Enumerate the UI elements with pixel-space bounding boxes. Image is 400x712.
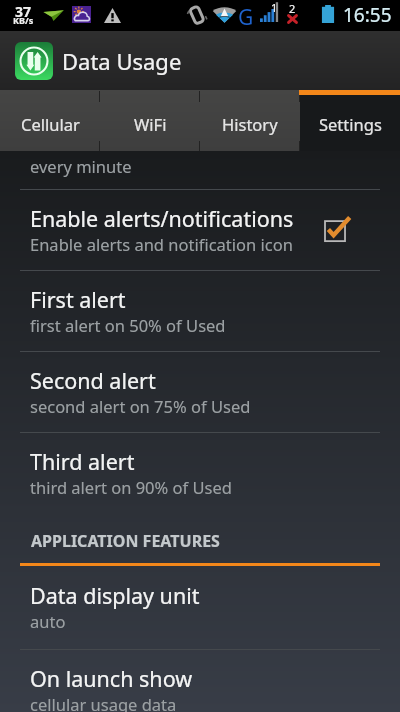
staticText: Third alert xyxy=(30,447,135,476)
staticText: First alert xyxy=(30,285,126,314)
button[interactable]: Data display unit xyxy=(0,566,400,649)
button[interactable]: On launch show xyxy=(0,649,400,712)
staticText: auto xyxy=(30,610,66,632)
button[interactable]: Settings xyxy=(300,90,400,151)
staticText: cellular usage data xyxy=(30,693,177,712)
staticText: Data display unit xyxy=(30,581,200,610)
staticText: Second alert xyxy=(30,366,156,395)
staticText: Enable alerts and notification icon xyxy=(30,233,293,255)
staticText: On launch show xyxy=(30,664,193,693)
button[interactable]: Enable alerts/notifications xyxy=(0,189,400,270)
staticText: third alert on 90% of Used xyxy=(30,476,232,498)
staticText: 1 xyxy=(271,0,278,15)
staticText: G xyxy=(238,3,254,32)
button[interactable]: Data Usage xyxy=(0,31,400,90)
other: Enable alerts toggle xyxy=(325,215,351,241)
staticText: 2 xyxy=(289,1,296,16)
staticText: Enable alerts/notifications xyxy=(30,204,294,233)
staticText: WiFi xyxy=(134,113,167,135)
button[interactable]: Third alert xyxy=(0,432,400,513)
staticText: Cellular xyxy=(21,113,80,135)
staticText: Data Usage xyxy=(62,46,182,76)
staticText: KB/s xyxy=(13,14,34,26)
staticText: every minute xyxy=(30,155,132,177)
button[interactable]: Second alert xyxy=(0,351,400,432)
staticText: APPLICATION FEATURES xyxy=(31,530,220,552)
staticText: second alert on 75% of Used xyxy=(30,395,251,417)
staticText: first alert on 50% of Used xyxy=(30,314,226,336)
button[interactable]: History xyxy=(200,90,300,151)
staticText: 16:55 xyxy=(343,2,392,28)
button[interactable]: Cellular xyxy=(0,90,100,151)
button[interactable]: First alert xyxy=(0,270,400,351)
staticText: 37 xyxy=(15,2,32,21)
button[interactable]: WiFi xyxy=(100,90,200,151)
staticText: Settings xyxy=(319,113,382,135)
staticText: History xyxy=(222,113,278,135)
